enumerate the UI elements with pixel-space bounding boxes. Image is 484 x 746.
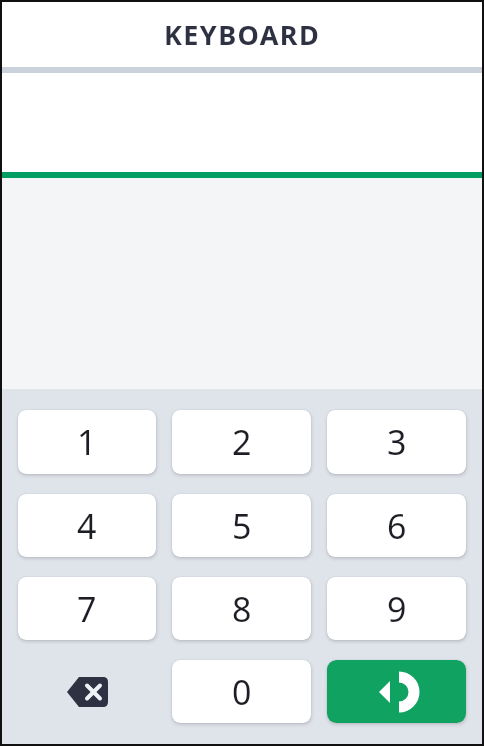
button[interactable]: 6 <box>327 494 466 557</box>
button[interactable]: 9 <box>327 577 466 640</box>
staticText: 0 <box>232 669 252 715</box>
button[interactable]: 0 <box>172 660 311 723</box>
staticText: 9 <box>387 586 407 632</box>
staticText: 8 <box>232 586 252 632</box>
button[interactable]: 2 <box>172 410 311 474</box>
staticText: 6 <box>387 503 407 549</box>
button[interactable]: 5 <box>172 494 311 557</box>
button[interactable]: 7 <box>18 577 156 640</box>
staticText: 5 <box>232 503 252 549</box>
button[interactable]: 8 <box>172 577 311 640</box>
button[interactable] <box>327 660 466 723</box>
staticText: 7 <box>77 586 97 632</box>
button[interactable]: 4 <box>18 494 156 557</box>
button[interactable]: 3 <box>327 410 466 474</box>
staticText: 3 <box>387 419 407 465</box>
staticText: 4 <box>77 503 97 549</box>
staticText: 2 <box>232 419 252 465</box>
button[interactable]: 1 <box>18 410 156 474</box>
button[interactable] <box>18 660 156 723</box>
staticText: KEYBOARD <box>164 16 321 53</box>
staticText: 1 <box>77 419 97 465</box>
